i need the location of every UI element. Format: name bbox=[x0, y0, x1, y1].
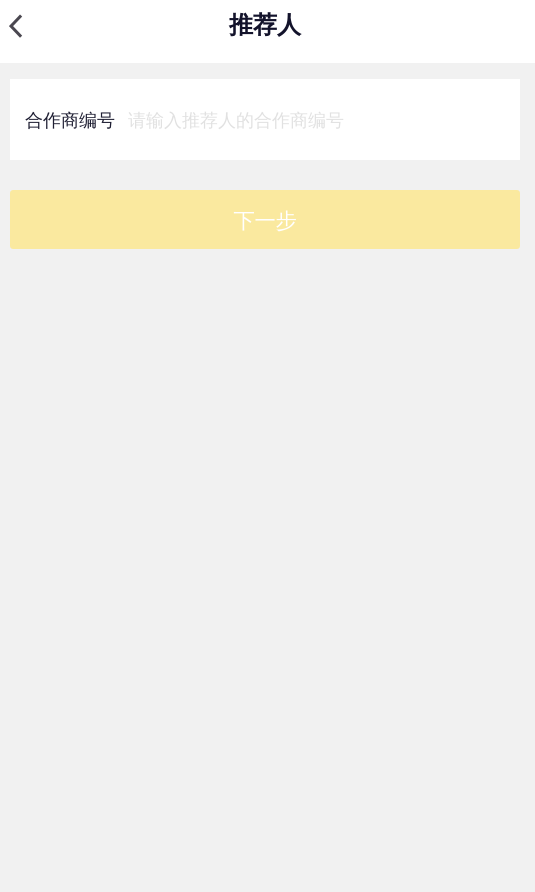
staticText: 推荐人 bbox=[229, 10, 301, 40]
staticText: 下一步 bbox=[233, 208, 296, 234]
button[interactable]: 下一步 bbox=[10, 190, 520, 249]
staticText: 请输入推荐人的合作商编号 bbox=[128, 109, 344, 132]
button[interactable]: 合作商编号 bbox=[10, 79, 520, 160]
staticText: 合作商编号 bbox=[25, 109, 115, 132]
button[interactable]: Back bbox=[0, 0, 32, 52]
